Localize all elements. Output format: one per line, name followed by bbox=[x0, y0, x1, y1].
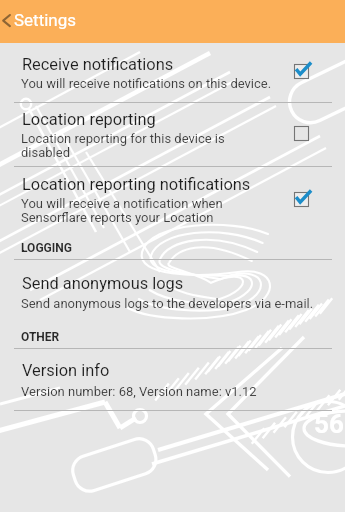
staticText: You will receive notifications on this d… bbox=[21, 76, 272, 91]
staticText: Send anonymous logs to the developers vi… bbox=[21, 296, 314, 311]
staticText: disabled bbox=[21, 145, 70, 160]
staticText: 56 bbox=[314, 409, 344, 439]
staticText: Location reporting for this device is bbox=[21, 131, 225, 146]
staticText: Version number: 68, Version name: v1.12 bbox=[21, 384, 257, 399]
staticText: You will receive a notification when bbox=[21, 196, 223, 211]
staticText: Location reporting bbox=[22, 110, 156, 129]
staticText: Settings bbox=[14, 10, 77, 30]
staticText: Version info bbox=[22, 361, 110, 380]
staticText: Send anonymous logs bbox=[22, 274, 184, 293]
staticText: Receive notifications bbox=[22, 55, 174, 74]
staticText: OTHER bbox=[21, 330, 60, 344]
staticText: LOGGING bbox=[21, 241, 72, 255]
staticText: Sensorflare reports your Location bbox=[21, 210, 214, 225]
button[interactable]: Checked bbox=[289, 59, 314, 84]
button[interactable]: Unchecked bbox=[289, 121, 314, 146]
staticText: Location reporting notifications bbox=[22, 175, 251, 194]
button[interactable]: Checked bbox=[289, 187, 314, 212]
button[interactable]: Back bbox=[0, 0, 345, 43]
